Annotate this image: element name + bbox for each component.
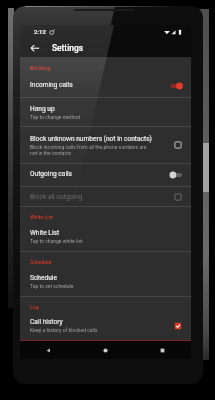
button[interactable]: Back: [20, 341, 77, 359]
other: Missed call: [49, 29, 55, 35]
staticText: Keep a history of blocked calls: [30, 327, 98, 333]
button[interactable]: White List: [20, 222, 191, 251]
button[interactable]: Hang up: [20, 98, 191, 126]
staticText: Schedule: [30, 274, 57, 282]
button[interactable]: Block unknown numbers (not in contacts): [20, 127, 191, 163]
button[interactable]: Call history: [20, 312, 191, 339]
staticText: Log: [30, 304, 39, 310]
staticText: Outgoing calls: [30, 170, 170, 178]
staticText: Block incoming calls from all the phone …: [30, 144, 147, 156]
staticText: Block all outgoing: [30, 193, 83, 201]
button[interactable]: Recent apps: [134, 341, 191, 359]
staticText: Settings: [52, 43, 84, 53]
button[interactable]: Outgoing calls: [20, 164, 191, 186]
staticText: Tap to set schedule: [30, 283, 74, 289]
staticText: Blocking: [30, 65, 51, 71]
staticText: Schedule: [30, 259, 52, 265]
staticText: White List: [30, 214, 54, 220]
button[interactable]: Schedule: [20, 267, 191, 296]
staticText: Incoming calls: [30, 81, 170, 89]
button[interactable]: Incoming calls: [20, 74, 191, 97]
button[interactable]: Block all outgoing: [20, 187, 191, 206]
button[interactable]: Home: [77, 341, 134, 359]
staticText: Block unknown numbers (not in contacts): [30, 135, 152, 143]
staticText: Tap to change method: [30, 114, 80, 120]
staticText: Hang up: [30, 105, 55, 113]
staticText: Tap to change white list: [30, 238, 83, 244]
staticText: Call history: [30, 318, 63, 326]
button[interactable]: Navigate up: [26, 39, 44, 57]
staticText: White List: [30, 229, 60, 237]
staticText: 2:12: [34, 28, 46, 35]
